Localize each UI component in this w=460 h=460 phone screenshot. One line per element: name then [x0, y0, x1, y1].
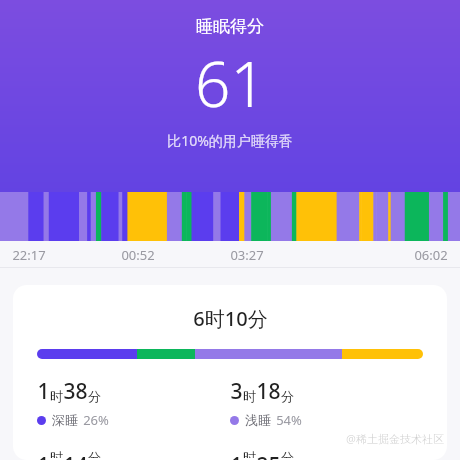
button[interactable]: 深睡 1 时 38 分 26%	[37, 377, 109, 429]
staticText: 分	[88, 388, 101, 404]
staticText: 14	[63, 451, 88, 460]
staticText: 时	[50, 388, 63, 404]
staticText: 1	[37, 451, 50, 460]
staticText: 38	[63, 377, 88, 406]
staticText: 浅睡	[245, 412, 271, 428]
button[interactable]: 清醒 1 时 25 分 8%	[230, 451, 295, 460]
staticText: 26%	[83, 411, 109, 429]
staticText: 03:27	[230, 246, 264, 264]
staticText: 00:52	[121, 246, 155, 264]
button[interactable]: 浅睡 3 时 18 分 54%	[230, 377, 302, 429]
staticText: 时	[243, 449, 256, 458]
staticText: 深睡	[52, 412, 78, 428]
staticText: 3	[230, 377, 243, 406]
staticText: 25	[256, 451, 281, 460]
staticText: 6时10分	[193, 305, 268, 332]
staticText: 时	[50, 449, 63, 458]
staticText: 18	[256, 377, 281, 406]
staticText: 分	[88, 449, 101, 458]
staticText: 1	[37, 377, 50, 406]
staticText: 1	[230, 451, 243, 460]
staticText: 时	[243, 388, 256, 404]
button[interactable]: 6时10分	[13, 285, 447, 460]
staticText: 睡眠得分	[196, 16, 264, 37]
button[interactable]: 快速眼动 1 时 14 分 12%	[37, 451, 135, 460]
staticText: 比10%的用户睡得香	[167, 131, 293, 150]
staticText: 54%	[276, 411, 302, 429]
staticText: 06:02	[414, 246, 448, 264]
staticText: 分	[281, 449, 294, 458]
staticText: 分	[281, 388, 294, 404]
staticText: @稀土掘金技术社区	[346, 431, 444, 446]
staticText: 22:17	[12, 246, 46, 264]
staticText: 61	[195, 41, 266, 125]
